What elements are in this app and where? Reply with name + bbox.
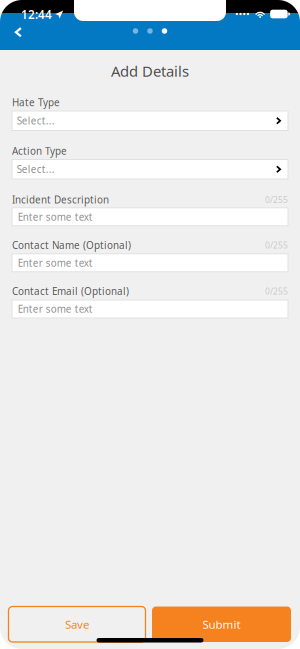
staticText: 0/255 bbox=[265, 239, 288, 251]
staticText: 12:44 bbox=[21, 6, 52, 22]
staticText: Select... bbox=[17, 114, 55, 127]
button[interactable]: Select... bbox=[12, 111, 288, 130]
button[interactable]: Enter some text bbox=[12, 300, 288, 318]
staticText: 0/255 bbox=[265, 194, 288, 205]
staticText: 0/255 bbox=[265, 285, 288, 297]
button[interactable]: Select... bbox=[12, 159, 288, 179]
staticText: Enter some text bbox=[18, 302, 93, 316]
staticText: Contact Email (Optional) bbox=[12, 284, 129, 298]
staticText: Enter some text bbox=[18, 256, 93, 269]
staticText: Save bbox=[65, 616, 89, 632]
button[interactable]: Save bbox=[8, 606, 145, 642]
staticText: Select... bbox=[17, 162, 55, 176]
button[interactable]: Submit bbox=[152, 606, 291, 642]
staticText: Submit bbox=[202, 616, 240, 632]
staticText: Add Details bbox=[111, 61, 189, 81]
staticText: Incident Description bbox=[12, 193, 109, 206]
button[interactable]: Enter some text bbox=[12, 254, 288, 272]
button[interactable]: Back bbox=[5, 18, 31, 46]
staticText: Action Type bbox=[12, 144, 67, 157]
staticText: Enter some text bbox=[18, 210, 93, 223]
staticText: Hate Type bbox=[12, 96, 60, 109]
button[interactable]: Enter some text bbox=[12, 208, 288, 226]
staticText: Contact Name (Optional) bbox=[12, 238, 131, 252]
